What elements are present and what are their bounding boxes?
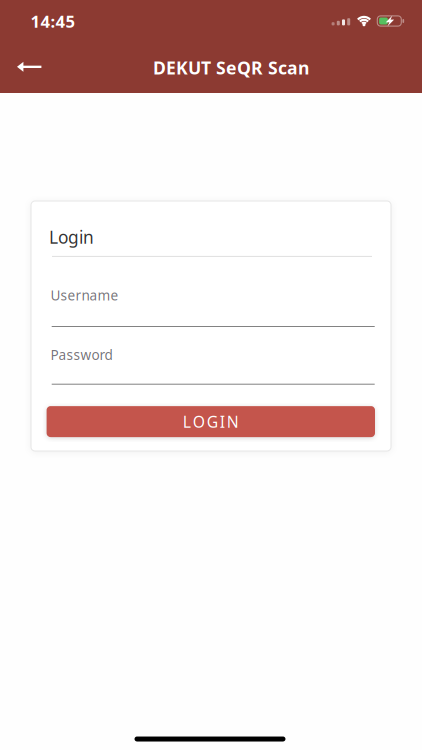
button[interactable]: Username — [52, 285, 375, 327]
staticText: 14:45 — [30, 10, 75, 32]
staticText: DEKUT SeQR Scan — [153, 56, 309, 80]
staticText: Username — [50, 286, 118, 304]
staticText: Login — [49, 225, 94, 249]
button[interactable]: LOGIN — [47, 406, 375, 437]
button[interactable]: Password — [52, 343, 375, 385]
staticText: Password — [50, 345, 112, 364]
button[interactable]: Back — [7, 45, 51, 89]
staticText: L O G I N — [183, 411, 239, 432]
